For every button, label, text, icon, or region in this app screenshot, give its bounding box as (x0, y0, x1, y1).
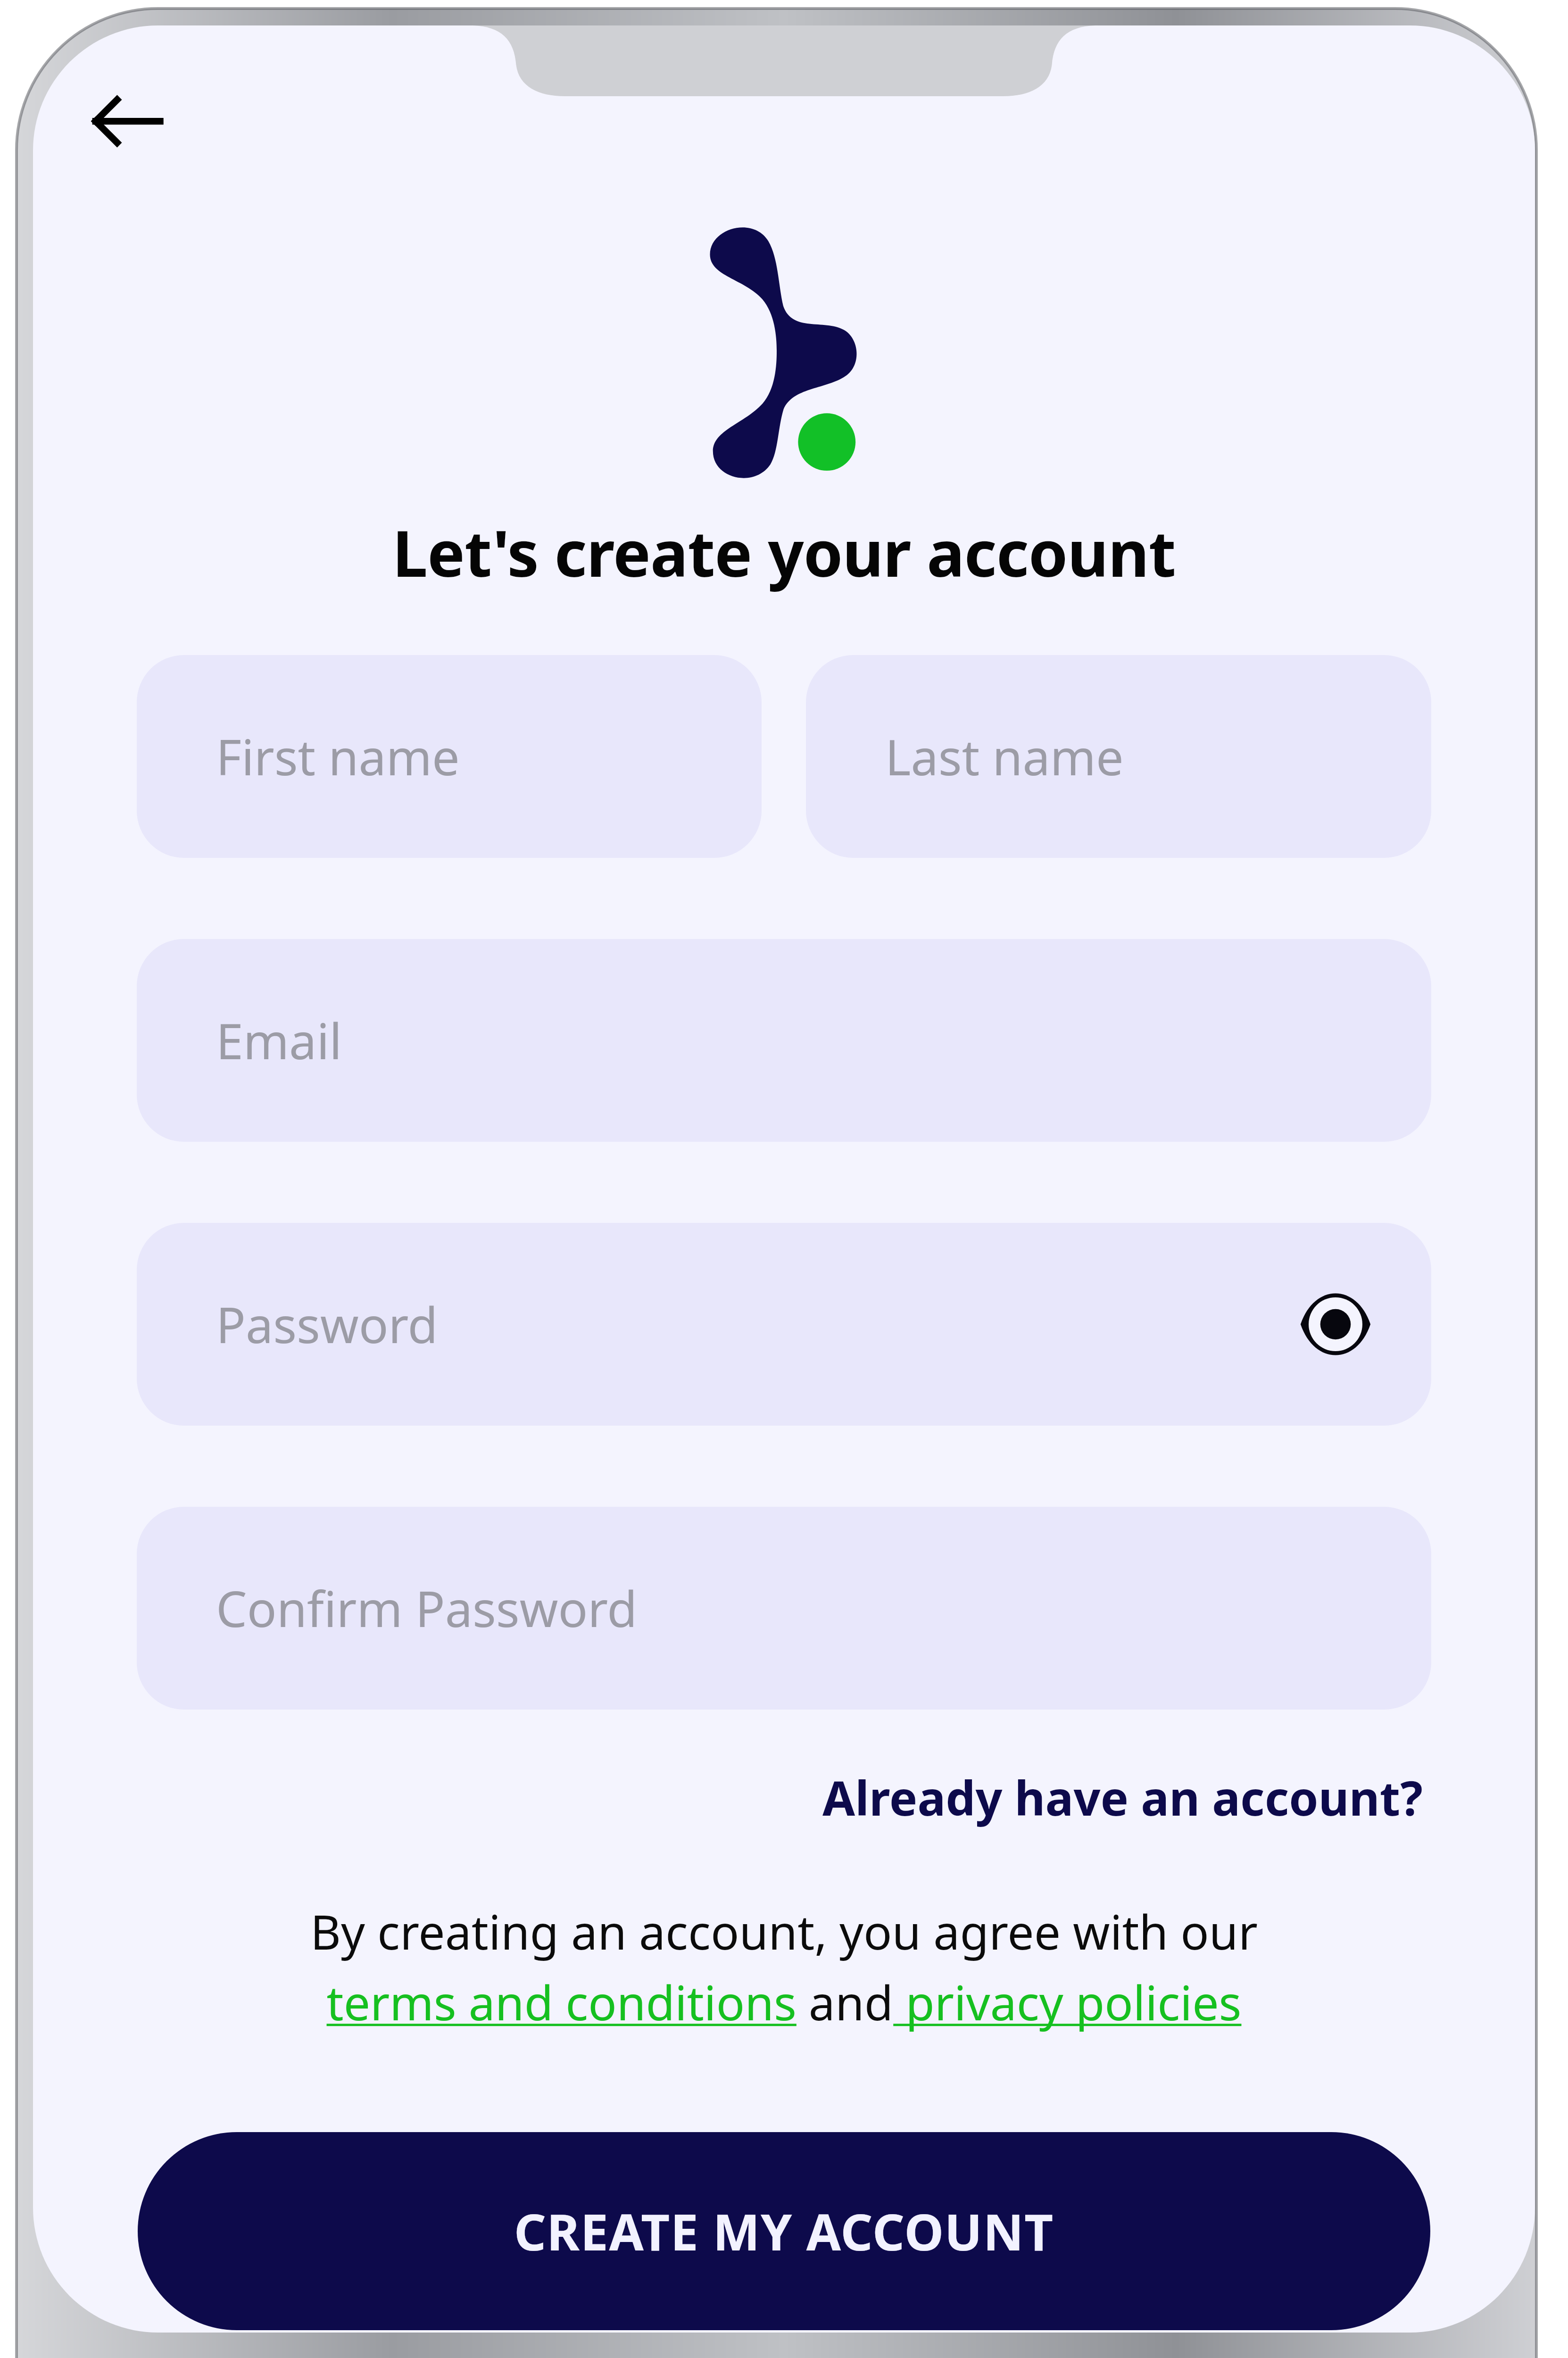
button[interactable]: Email (137, 939, 1431, 1142)
button[interactable]: Already have an account? (822, 1765, 1423, 1829)
staticText: Last name (885, 723, 1124, 790)
staticText: terms and conditions and privacy policie… (33, 1970, 1535, 2034)
button[interactable]: Confirm Password (137, 1507, 1431, 1710)
staticText: Confirm Password (216, 1575, 638, 1642)
staticText: First name (216, 723, 460, 790)
staticText: CREATE MY ACCOUNT (514, 2197, 1054, 2265)
button[interactable]: CREATE MY ACCOUNT (138, 2132, 1430, 2330)
button[interactable]: Back (85, 76, 174, 166)
staticText: Password (216, 1291, 438, 1358)
button[interactable]: Password (137, 1223, 1431, 1426)
staticText: By creating an account, you agree with o… (33, 1899, 1535, 1963)
staticText: Let's create your account (33, 509, 1535, 596)
button[interactable]: First name (137, 655, 762, 858)
staticText: Already have an account? (822, 1765, 1423, 1829)
button[interactable]: Last name (806, 655, 1431, 858)
button[interactable]: terms and conditions and privacy policie… (33, 1970, 1535, 2034)
staticText: Email (216, 1007, 342, 1074)
button[interactable]: Show password (1291, 1279, 1380, 1369)
